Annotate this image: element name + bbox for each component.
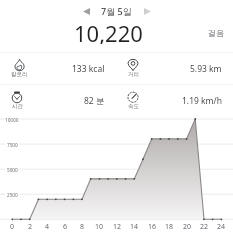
staticText: 82 분 <box>84 95 105 107</box>
staticText: 14 <box>130 222 139 232</box>
staticText: 2500 <box>7 192 18 198</box>
staticText: 7월 5일 <box>101 5 132 17</box>
staticText: 24 <box>217 222 226 232</box>
staticText: 10 <box>95 222 104 232</box>
staticText: 0 <box>10 222 15 232</box>
staticText: 7500 <box>7 142 18 148</box>
staticText: 20 <box>183 222 192 232</box>
staticText: 18 <box>165 222 174 232</box>
staticText: 12 <box>113 222 122 232</box>
staticText: 시간 <box>12 103 23 110</box>
button[interactable]: 거리 <box>116 53 233 84</box>
staticText: 133 kcal <box>72 63 105 75</box>
button[interactable]: Next day <box>140 4 154 18</box>
staticText: 6 <box>63 222 68 232</box>
staticText: 2 <box>28 222 33 232</box>
staticText: 10000 <box>5 117 19 123</box>
staticText: 속도 <box>128 103 139 110</box>
staticText: 10,220 <box>74 18 143 44</box>
staticText: 1.19 km/h <box>182 95 222 107</box>
button[interactable]: 칼로리 <box>0 53 116 84</box>
button[interactable]: Previous day <box>79 4 93 18</box>
staticText: 22 <box>200 222 209 232</box>
button[interactable]: 속도 <box>116 85 233 116</box>
staticText: 거리 <box>128 71 139 78</box>
staticText: 8 <box>80 222 85 232</box>
staticText: 5.93 km <box>190 63 222 75</box>
staticText: 4 <box>45 222 50 232</box>
staticText: 걸음 <box>208 28 224 38</box>
staticText: 16 <box>148 222 157 232</box>
staticText: 5000 <box>7 167 18 173</box>
staticText: 칼로리 <box>11 71 28 78</box>
button[interactable]: 시간 <box>0 85 116 116</box>
